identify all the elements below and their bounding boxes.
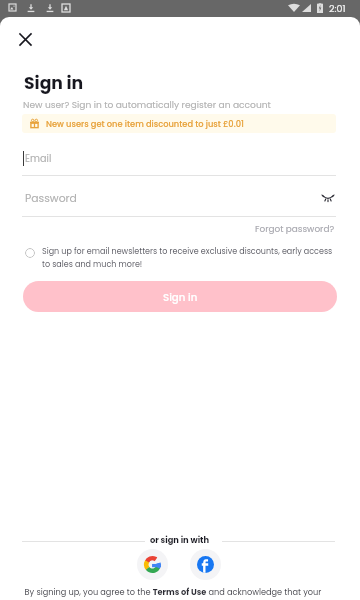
staticText: Sign in	[24, 71, 84, 95]
button[interactable]: Show password	[316, 186, 340, 210]
staticText: Email	[25, 152, 52, 166]
staticText: Sign up for email newsletters to receive…	[42, 246, 337, 270]
staticText: or sign in with	[150, 534, 210, 546]
button[interactable]: Sign in with Google	[137, 549, 168, 580]
button[interactable]: Sign up for email newsletters	[25, 248, 35, 258]
staticText: New users get one item discounted to jus…	[46, 118, 244, 130]
button[interactable]: Close	[9, 23, 41, 55]
staticText: Sign in	[163, 290, 198, 304]
button[interactable]: Forgot password?	[253, 221, 337, 237]
staticText: New user? Sign in to automatically regis…	[23, 98, 271, 111]
staticText: Password	[25, 191, 77, 206]
staticText: 2:01	[329, 2, 346, 15]
button[interactable]: Sign in	[23, 281, 337, 312]
button[interactable]: Sign in with Facebook	[190, 549, 221, 580]
staticText: By signing up, you agree to the Terms of…	[14, 586, 332, 597]
